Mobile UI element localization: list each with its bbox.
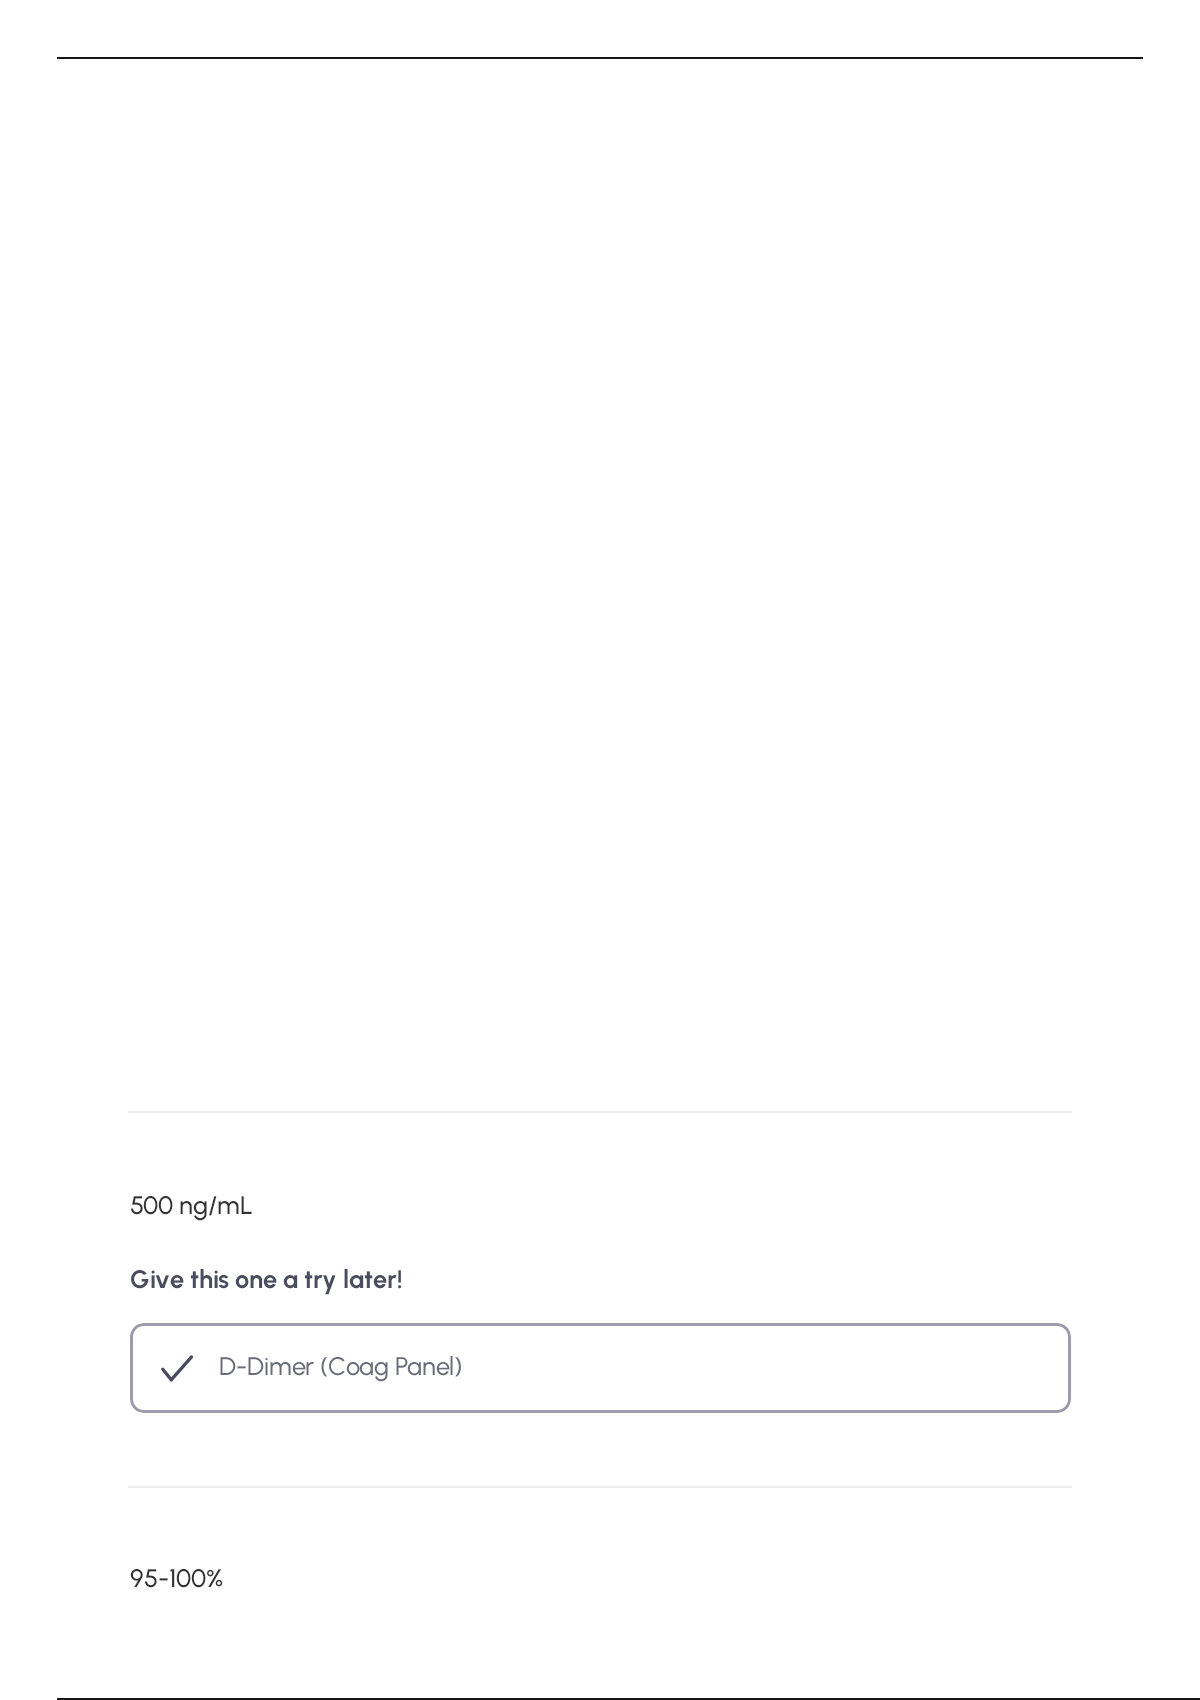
button[interactable]: Selected (130, 1323, 1071, 1413)
other: Selected (161, 1355, 193, 1381)
staticText: D-Dimer (Coag Panel) (219, 1351, 463, 1381)
